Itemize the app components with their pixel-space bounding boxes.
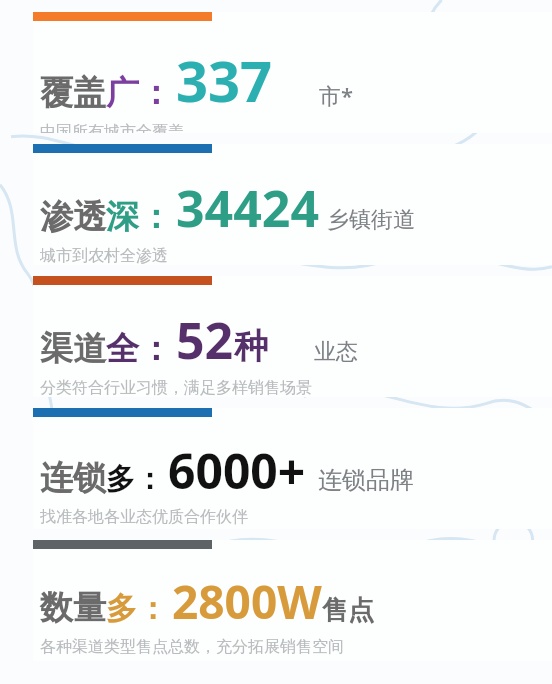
staticText: 34424 — [176, 174, 319, 242]
staticText: 售点 — [322, 594, 374, 627]
staticText: 市* — [319, 80, 354, 110]
staticText: 52 — [176, 306, 234, 374]
button[interactable]: 渗透深： — [33, 144, 552, 265]
staticText: 连锁多： — [40, 457, 164, 499]
staticText: 城市到农村全渗透 — [40, 246, 168, 265]
staticText: 分类符合行业习惯，满足多样销售场景 — [40, 378, 312, 397]
staticText: 数量多： — [40, 587, 168, 629]
staticText: 业态 — [314, 338, 358, 366]
button[interactable]: 连锁多： — [33, 408, 552, 529]
staticText: 渠道全： — [40, 328, 172, 370]
staticText: 2800W — [172, 570, 322, 633]
staticText: 各种渠道类型售点总数，充分拓展销售空间 — [40, 637, 344, 657]
staticText: 找准各地各业态优质合作伙伴 — [40, 507, 248, 527]
staticText: 覆盖广： — [40, 72, 172, 114]
staticText: 连锁品牌 — [318, 465, 414, 495]
staticText: 6000+ — [168, 438, 306, 503]
staticText: 337 — [176, 42, 273, 118]
button[interactable]: 数量多： — [33, 540, 552, 661]
staticText: 中国所有城市全覆盖 — [40, 122, 184, 133]
staticText: 渗透深： — [40, 196, 172, 238]
button[interactable]: 渠道全： — [33, 276, 552, 397]
button[interactable]: 覆盖广： — [33, 12, 552, 133]
staticText: 乡镇街道 — [327, 206, 415, 234]
staticText: 种 — [234, 325, 268, 368]
